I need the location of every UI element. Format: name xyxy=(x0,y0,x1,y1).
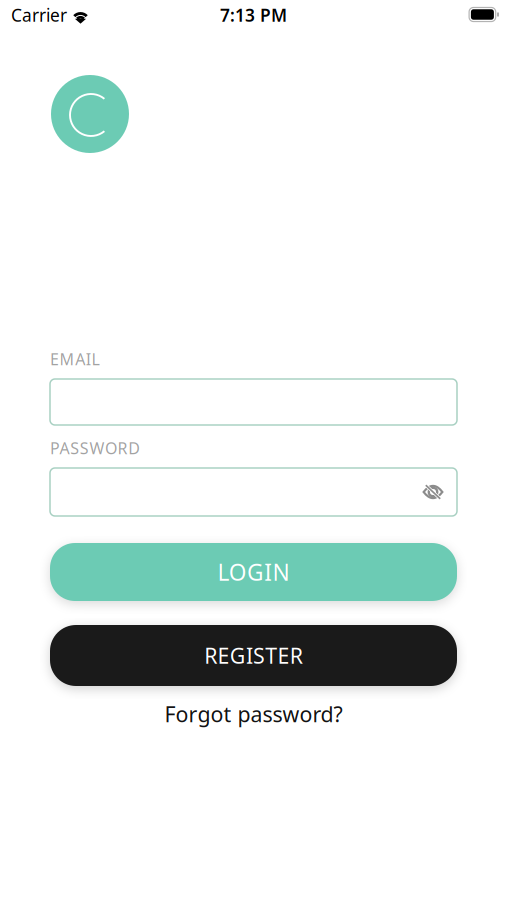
button[interactable]: Forgot password? xyxy=(50,699,457,729)
staticText: REGISTER xyxy=(204,641,303,670)
button[interactable]: LOGIN xyxy=(50,543,457,601)
staticText: Forgot password? xyxy=(164,700,342,728)
staticText: Carrier xyxy=(11,3,67,26)
button[interactable]: Password xyxy=(50,468,457,516)
staticText: PASSWORD xyxy=(50,437,140,459)
staticText: LOGIN xyxy=(217,557,290,587)
button[interactable]: Email xyxy=(50,379,457,425)
staticText: EMAIL xyxy=(50,348,99,370)
staticText: 7:13 PM xyxy=(220,3,287,26)
button[interactable]: REGISTER xyxy=(50,625,457,686)
button[interactable]: Show password xyxy=(415,468,451,516)
